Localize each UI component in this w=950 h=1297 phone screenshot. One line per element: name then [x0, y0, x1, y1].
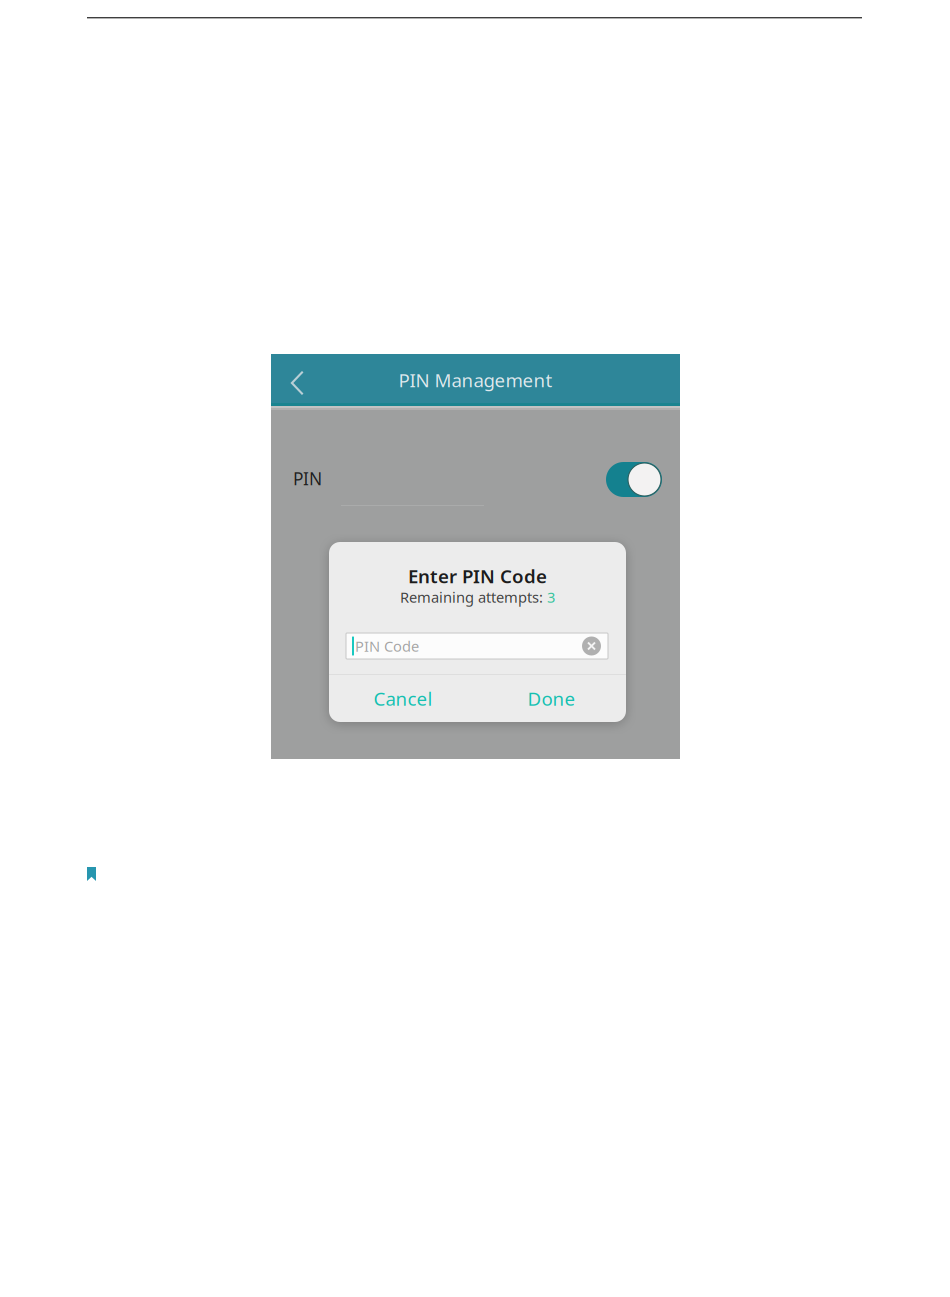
staticText: Done — [527, 686, 575, 711]
button[interactable]: Done — [477, 675, 626, 722]
button[interactable]: PIN, on — [606, 462, 662, 497]
staticText: PIN Code — [355, 636, 419, 656]
staticText: 3 — [547, 587, 555, 607]
staticText: PIN — [293, 467, 322, 490]
staticText: Remaining attempts: — [400, 587, 543, 607]
staticText: PIN Management — [398, 368, 552, 392]
button[interactable]: Cancel — [329, 675, 477, 722]
staticText: Cancel — [373, 686, 432, 711]
staticText: Enter PIN Code — [408, 564, 547, 588]
button[interactable]: Back — [275, 357, 319, 409]
